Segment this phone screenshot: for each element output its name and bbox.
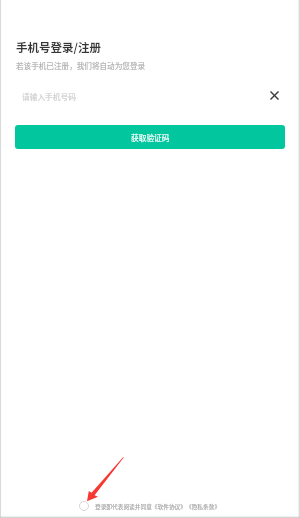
button[interactable]: 获取验证码	[15, 125, 285, 149]
staticText: 请输入手机号码	[22, 91, 76, 102]
staticText: 若该手机已注册，我们将自动为您登录	[16, 60, 146, 71]
staticText: 获取验证码	[131, 132, 170, 143]
button[interactable]: Clear phone number	[262, 83, 286, 107]
staticText: 手机号登录/注册	[16, 39, 101, 56]
button[interactable]: 登录即代表阅读并同意《软件协议》《隐私条款》	[77, 499, 221, 513]
staticText: 登录即代表阅读并同意《软件协议》《隐私条款》	[95, 502, 221, 510]
button[interactable]: 请输入手机号码	[16, 84, 256, 108]
